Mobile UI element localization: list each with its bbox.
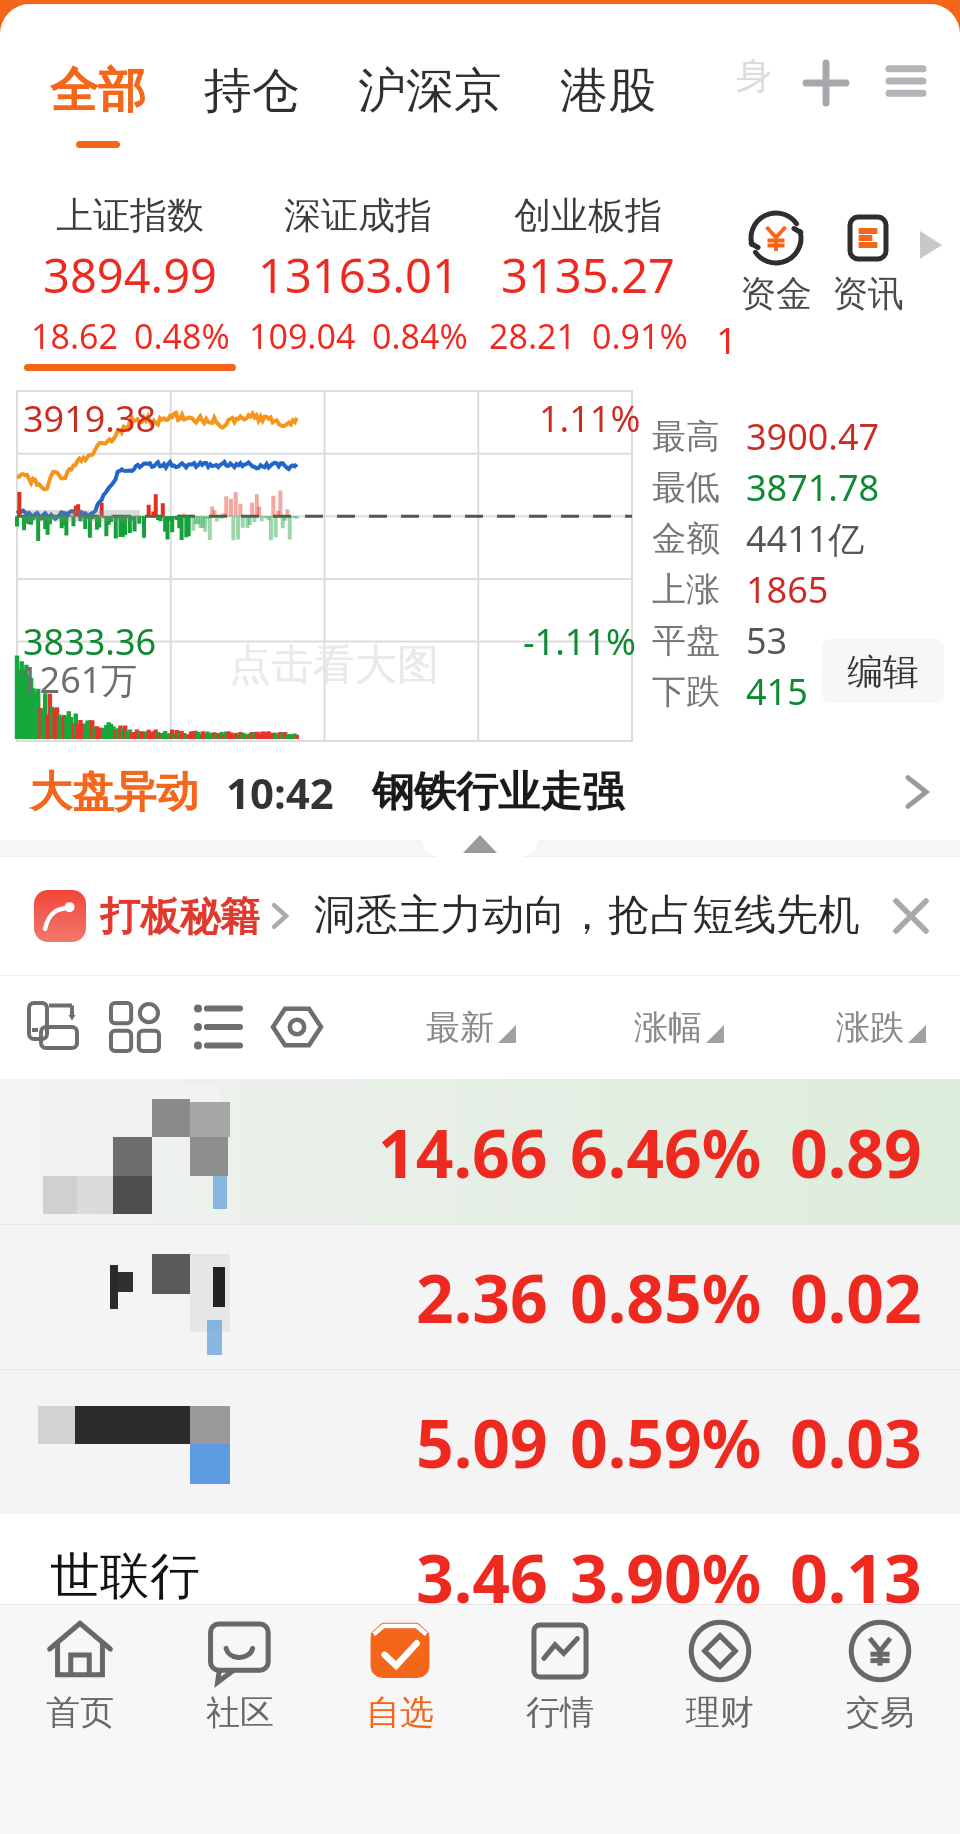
staticText: 10:42	[226, 764, 334, 821]
staticText: 0.48%	[134, 313, 230, 359]
staticText: 金额	[652, 517, 720, 560]
staticText: 1	[716, 314, 738, 364]
button[interactable]: 理财	[640, 1605, 800, 1745]
staticText: 全部	[50, 61, 146, 121]
button[interactable]: 编辑	[822, 639, 944, 703]
button[interactable]: 3919.38	[17, 391, 632, 741]
staticText: 交易	[846, 1691, 914, 1734]
staticText: 首页	[46, 1691, 114, 1734]
button[interactable]: Settings	[266, 996, 328, 1058]
staticText: 点击看大图	[229, 639, 439, 692]
staticText: 3900.47	[746, 412, 880, 461]
button[interactable]: 自选	[320, 1605, 480, 1745]
staticText: 28.21	[489, 313, 576, 359]
button[interactable]: 交易	[800, 1605, 960, 1745]
staticText: 0.89	[790, 1107, 922, 1197]
staticText: 0.84%	[372, 313, 468, 359]
staticText: 涨幅	[634, 1006, 702, 1049]
staticText: 1261万	[19, 655, 138, 704]
button[interactable]: 世联行	[0, 1514, 960, 1659]
button[interactable]: 打板秘籍	[34, 890, 290, 942]
staticText: 下跌	[652, 670, 720, 713]
staticText: 最新	[426, 1006, 494, 1049]
staticText: 大盘异动	[30, 766, 198, 819]
staticText: 415	[746, 667, 808, 716]
staticText: 13163.01	[258, 243, 459, 307]
button[interactable]: 涨跌	[836, 1006, 926, 1049]
staticText: 资金	[740, 271, 812, 316]
button[interactable]: 5.09	[0, 1369, 960, 1514]
staticText: 世联行	[50, 1545, 200, 1608]
staticText: 1.11%	[539, 394, 641, 443]
staticText: 平盘	[652, 619, 720, 662]
staticText: 3.46	[416, 1532, 548, 1622]
staticText: 涨跌	[836, 1006, 904, 1049]
staticText: 1865	[746, 565, 829, 614]
button[interactable]: 全部	[50, 61, 146, 148]
staticText: 创业板指	[514, 192, 662, 239]
staticText: 4411亿	[746, 514, 865, 563]
staticText: 理财	[686, 1691, 754, 1734]
staticText: 0.91%	[592, 313, 688, 359]
button[interactable]: 资金	[740, 209, 812, 316]
button[interactable]: Add	[802, 59, 850, 107]
staticText: 5.09	[416, 1397, 548, 1487]
button[interactable]: Grid view	[104, 996, 166, 1058]
staticText: 上证指数	[56, 192, 204, 239]
staticText: 0.03	[790, 1397, 922, 1487]
staticText: 3894.99	[43, 243, 217, 307]
staticText: 社区	[206, 1691, 274, 1734]
staticText: 0.59%	[570, 1397, 762, 1487]
staticText: 3135.27	[501, 243, 675, 307]
staticText: 自选	[366, 1691, 434, 1734]
button[interactable]: 港股	[560, 61, 656, 121]
staticText: 53	[746, 616, 788, 665]
button[interactable]: More tabs	[732, 53, 776, 97]
button[interactable]: Menu	[884, 59, 928, 103]
button[interactable]: 社区	[160, 1605, 320, 1745]
staticText: 编辑	[847, 649, 919, 694]
button[interactable]: 深证成指	[228, 192, 488, 371]
button[interactable]: 资讯	[832, 209, 904, 316]
button[interactable]: Collapse	[422, 817, 538, 857]
staticText: 最低	[652, 466, 720, 509]
button[interactable]: 2.36	[0, 1224, 960, 1369]
staticText: 深证成指	[284, 192, 432, 239]
button[interactable]: 14.66	[0, 1079, 960, 1224]
staticText: 洞悉主力动向，抢占短线先机	[314, 889, 860, 942]
staticText: 2.36	[416, 1252, 548, 1342]
button[interactable]: 持仓	[204, 61, 300, 121]
staticText: 6.46%	[570, 1107, 762, 1197]
button[interactable]: 沪深京	[358, 61, 502, 121]
staticText: 行情	[526, 1691, 594, 1734]
staticText: 0.85%	[570, 1252, 762, 1342]
button[interactable]: List view	[186, 996, 248, 1058]
button[interactable]: Layout view	[22, 996, 84, 1058]
staticText: 最高	[652, 415, 720, 458]
staticText: 打板秘籍	[100, 891, 260, 941]
button[interactable]: 首页	[0, 1605, 160, 1745]
staticText: 3.90%	[570, 1532, 762, 1622]
staticText: 钢铁行业走强	[372, 766, 624, 819]
staticText: 3919.38	[23, 394, 157, 443]
button[interactable]: 创业板指	[458, 192, 718, 371]
button[interactable]: 涨幅	[634, 1006, 724, 1049]
button[interactable]: 最新	[426, 1006, 516, 1049]
staticText: 0.13	[790, 1532, 922, 1622]
staticText: 3833.36	[23, 617, 157, 666]
staticText: 上涨	[652, 568, 720, 611]
button[interactable]: Close	[888, 893, 934, 939]
staticText: 3871.78	[746, 463, 880, 512]
staticText: 14.66	[378, 1107, 548, 1197]
staticText: 109.04	[249, 313, 356, 359]
staticText: -1.11%	[523, 617, 636, 666]
button[interactable]: 大盘异动	[0, 750, 960, 834]
staticText: 身	[736, 53, 772, 97]
staticText: 0.02	[790, 1252, 922, 1342]
staticText: 资讯	[832, 271, 904, 316]
button[interactable]: 行情	[480, 1605, 640, 1745]
button[interactable]: 上证指数	[0, 192, 260, 371]
staticText: 18.62	[31, 313, 118, 359]
